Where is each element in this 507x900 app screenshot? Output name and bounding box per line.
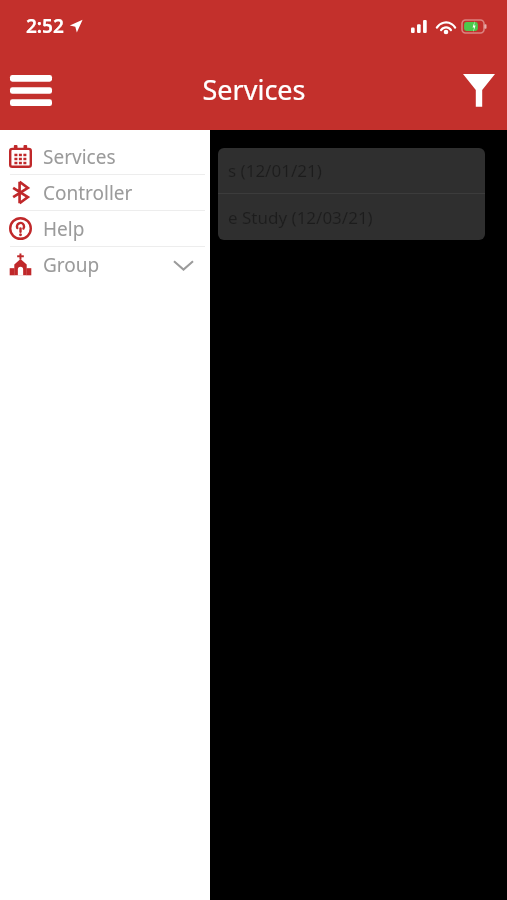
staticText: e Study (12/03/21) (228, 206, 373, 229)
button[interactable]: Filter (451, 62, 507, 118)
staticText: Help (43, 216, 85, 242)
staticText: Group (43, 252, 100, 278)
staticText: Services (43, 144, 116, 170)
staticText: s (12/01/21) (228, 159, 322, 182)
staticText: 2:52 (26, 13, 64, 39)
button[interactable]: Controller (0, 175, 210, 210)
button[interactable]: Group (0, 247, 210, 282)
staticText: Controller (43, 180, 133, 206)
button[interactable]: Open navigation menu (0, 61, 62, 119)
button[interactable]: e Study (12/03/21) (218, 194, 485, 240)
button[interactable]: Services (0, 139, 210, 174)
button[interactable]: Help (0, 211, 210, 246)
staticText: Services (202, 71, 306, 108)
